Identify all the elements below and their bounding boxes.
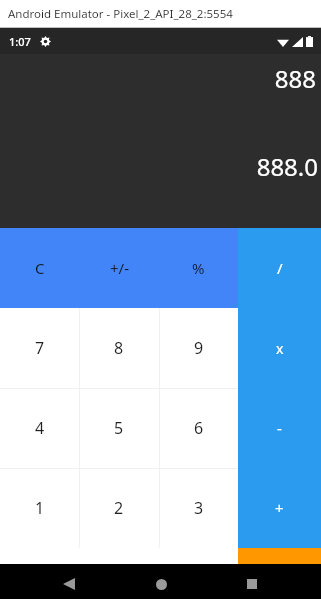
button[interactable]: Home: [138, 569, 184, 599]
staticText: /: [277, 258, 283, 278]
button[interactable]: /: [238, 228, 321, 308]
button[interactable]: 8: [79, 308, 159, 388]
staticText: x: [276, 339, 284, 358]
button[interactable]: +/-: [79, 228, 159, 308]
staticText: 5: [114, 417, 124, 439]
button[interactable]: Recent apps: [229, 569, 275, 599]
staticText: 9: [194, 337, 204, 359]
staticText: 6: [194, 417, 204, 439]
staticText: %: [192, 258, 205, 278]
staticText: 888: [274, 62, 316, 95]
button[interactable]: %: [159, 228, 238, 308]
staticText: 7: [35, 337, 45, 359]
button[interactable]: 6: [159, 388, 238, 468]
button[interactable]: +: [238, 468, 321, 548]
button[interactable]: 4: [0, 388, 79, 468]
button[interactable]: 9: [159, 308, 238, 388]
button[interactable]: C: [0, 228, 79, 308]
staticText: Android Emulator - Pixel_2_API_28_2:5554: [8, 6, 233, 22]
staticText: 2: [114, 497, 124, 519]
button[interactable]: 5: [79, 388, 159, 468]
staticText: 1:07: [9, 34, 31, 49]
staticText: 8: [114, 337, 124, 359]
staticText: -: [277, 418, 282, 438]
button[interactable]: -: [238, 388, 321, 468]
button[interactable]: 1: [0, 468, 79, 548]
staticText: +: [275, 498, 284, 518]
staticText: 3: [194, 497, 204, 519]
staticText: C: [35, 258, 45, 278]
staticText: +/-: [110, 258, 129, 278]
button[interactable]: 3: [159, 468, 238, 548]
staticText: 888.0: [256, 150, 318, 183]
button[interactable]: 2: [79, 468, 159, 548]
button[interactable]: Back: [46, 569, 92, 599]
staticText: 1: [35, 497, 45, 519]
button[interactable]: x: [238, 308, 321, 388]
staticText: 4: [35, 417, 45, 439]
button[interactable]: 7: [0, 308, 79, 388]
